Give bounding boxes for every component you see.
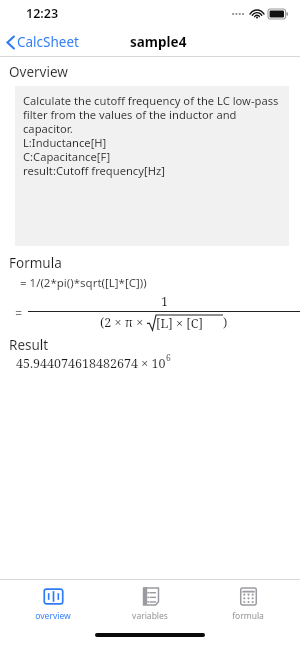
other: Variables	[140, 586, 161, 607]
button[interactable]: Variables	[105, 582, 195, 625]
staticText: = 1/(2*pi()*sqrt([L]*[C]))	[20, 275, 147, 291]
staticText: =	[15, 304, 23, 322]
staticText: [L] × [C]	[156, 315, 203, 332]
staticText: Calculate the cutoff frequency of the LC…	[23, 93, 289, 178]
staticText: Formula	[9, 254, 62, 272]
other: Formula	[238, 586, 259, 607]
staticText: 6	[166, 352, 171, 364]
button[interactable]: CalcSheet	[0, 29, 87, 55]
staticText: 12:23	[26, 5, 59, 22]
staticText: Overview	[9, 63, 68, 81]
button[interactable]: Formula	[203, 582, 293, 625]
staticText: 45.944074618482674 × 10	[16, 355, 166, 372]
staticText: CalcSheet	[17, 33, 79, 51]
staticText: formula	[232, 610, 264, 622]
staticText: Result	[9, 336, 49, 354]
staticText: )	[223, 314, 228, 331]
other: Overview	[43, 586, 64, 607]
staticText: variables	[132, 610, 168, 622]
staticText: 1	[161, 293, 168, 310]
staticText: (2 × π ×	[100, 314, 147, 331]
staticText: sample4	[130, 33, 187, 51]
staticText: overview	[35, 610, 71, 622]
button[interactable]: Overview	[8, 582, 98, 625]
